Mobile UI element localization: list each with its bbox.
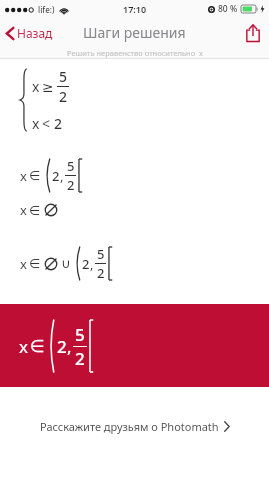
staticText: < [42,114,51,133]
staticText: life:) [38,4,55,15]
button[interactable]: Назад [0,21,61,45]
staticText: , [90,255,94,273]
staticText: 2 [59,87,68,106]
staticText: ∈ [29,256,41,271]
staticText: 2 [82,255,90,273]
staticText: x [20,167,27,185]
staticText: 5 [97,245,105,263]
staticText: 5 [67,157,75,175]
button[interactable]: Share [237,21,269,45]
staticText: Расскажите друзьям о Photomath [40,419,219,434]
staticText: Назад [17,25,53,41]
staticText: ≥ [42,79,54,95]
staticText: 5 [75,323,85,346]
staticText: x [19,335,28,358]
staticText: 17:10 [123,3,147,15]
staticText: 2 [54,114,63,133]
staticText: Решить неравенство относительно x [67,48,203,58]
staticText: x [20,201,27,219]
staticText: ∈ [30,336,45,356]
staticText: 2 [67,176,75,194]
staticText: 5 [59,67,68,86]
staticText: 2 [57,335,67,358]
button[interactable]: Расскажите друзьям о Photomath [0,409,269,444]
staticText: Шаги решения [83,23,186,42]
button[interactable]: x [0,304,269,387]
staticText: ∈ [29,203,41,218]
staticText: 2 [75,347,85,370]
staticText: x [20,255,27,273]
staticText: 2 [97,264,105,282]
staticText: 2 [52,167,60,185]
staticText: ∪ [61,256,71,271]
staticText: x [32,114,40,133]
staticText: x [32,77,40,96]
staticText: 80 % [218,3,238,15]
staticText: ∈ [29,168,41,183]
staticText: , [67,335,72,358]
staticText: , [60,167,64,185]
